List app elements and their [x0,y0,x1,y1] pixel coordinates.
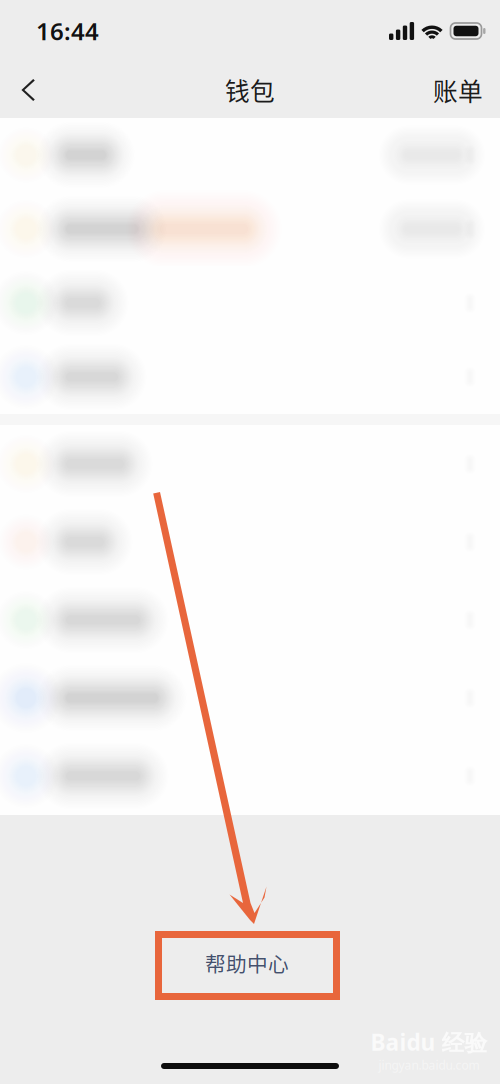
button[interactable] [0,192,500,266]
staticText: 帮助中心 [205,948,289,978]
button[interactable] [0,425,500,503]
staticText: 16:44 [36,15,99,47]
staticText: Baidu 经验 [370,1027,487,1057]
staticText: 钱包 [225,72,275,108]
button[interactable] [0,118,500,192]
button[interactable] [0,340,500,414]
button[interactable] [0,266,500,340]
button[interactable] [0,659,500,737]
button[interactable] [0,581,500,659]
button[interactable]: 帮助中心 [154,929,340,997]
button[interactable] [0,503,500,581]
button[interactable]: 账单 [416,62,500,118]
button[interactable] [0,737,500,815]
staticText: 账单 [433,72,483,108]
button[interactable]: Back [0,62,56,118]
